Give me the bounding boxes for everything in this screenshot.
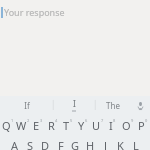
staticText: I bbox=[73, 98, 76, 109]
staticText: U bbox=[92, 118, 101, 133]
button[interactable]: If bbox=[0, 96, 53, 114]
staticText: 5 bbox=[70, 118, 73, 123]
button[interactable]: O bbox=[120, 115, 135, 135]
button[interactable]: R bbox=[45, 115, 60, 135]
button[interactable]: W bbox=[15, 115, 30, 135]
button[interactable]: E bbox=[30, 115, 45, 135]
staticText: 0 bbox=[145, 118, 148, 123]
staticText: R bbox=[48, 118, 55, 133]
staticText: A bbox=[11, 138, 19, 150]
button[interactable]: S bbox=[23, 138, 38, 150]
button[interactable]: H bbox=[83, 138, 98, 150]
staticText: 8 bbox=[113, 118, 116, 123]
button[interactable]: I bbox=[105, 115, 120, 135]
staticText: Y bbox=[78, 118, 85, 133]
button[interactable]: D bbox=[38, 138, 53, 150]
staticText: 7 bbox=[101, 118, 104, 123]
staticText: Your response bbox=[4, 6, 65, 18]
button[interactable]: L bbox=[128, 138, 143, 150]
staticText: 9 bbox=[131, 118, 134, 123]
button[interactable]: Your response bbox=[0, 0, 150, 96]
staticText: J bbox=[104, 138, 108, 150]
button[interactable]: K bbox=[113, 138, 128, 150]
staticText: 1 bbox=[11, 118, 14, 123]
staticText: D bbox=[41, 138, 50, 150]
button[interactable]: The bbox=[95, 96, 131, 114]
staticText: E bbox=[33, 118, 40, 133]
staticText: If bbox=[24, 100, 30, 111]
button[interactable]: G bbox=[68, 138, 83, 150]
staticText: 3 bbox=[40, 118, 43, 123]
button[interactable]: P bbox=[135, 115, 150, 135]
staticText: K bbox=[117, 138, 124, 150]
button[interactable]: Q bbox=[0, 115, 15, 135]
button[interactable]: F bbox=[53, 138, 68, 150]
button[interactable]: T bbox=[60, 115, 75, 135]
staticText: 4 bbox=[55, 118, 58, 123]
button[interactable]: I bbox=[53, 96, 95, 114]
staticText: S bbox=[27, 138, 34, 150]
staticText: P bbox=[138, 118, 145, 133]
button[interactable]: U bbox=[90, 115, 105, 135]
staticText: F bbox=[58, 138, 64, 150]
staticText: L bbox=[133, 138, 139, 150]
button[interactable]: Y bbox=[75, 115, 90, 135]
button[interactable]: J bbox=[98, 138, 113, 150]
staticText: I bbox=[109, 118, 113, 133]
staticText: W bbox=[16, 118, 27, 133]
button[interactable]: A bbox=[7, 138, 23, 150]
staticText: O bbox=[122, 118, 131, 133]
staticText: The bbox=[106, 100, 120, 111]
staticText: Q bbox=[2, 118, 11, 133]
staticText: T bbox=[63, 118, 70, 133]
staticText: G bbox=[71, 138, 80, 150]
staticText: 6 bbox=[85, 118, 88, 123]
staticText: 2 bbox=[27, 118, 30, 123]
staticText: H bbox=[86, 138, 95, 150]
button[interactable]: Voice input bbox=[131, 96, 150, 114]
